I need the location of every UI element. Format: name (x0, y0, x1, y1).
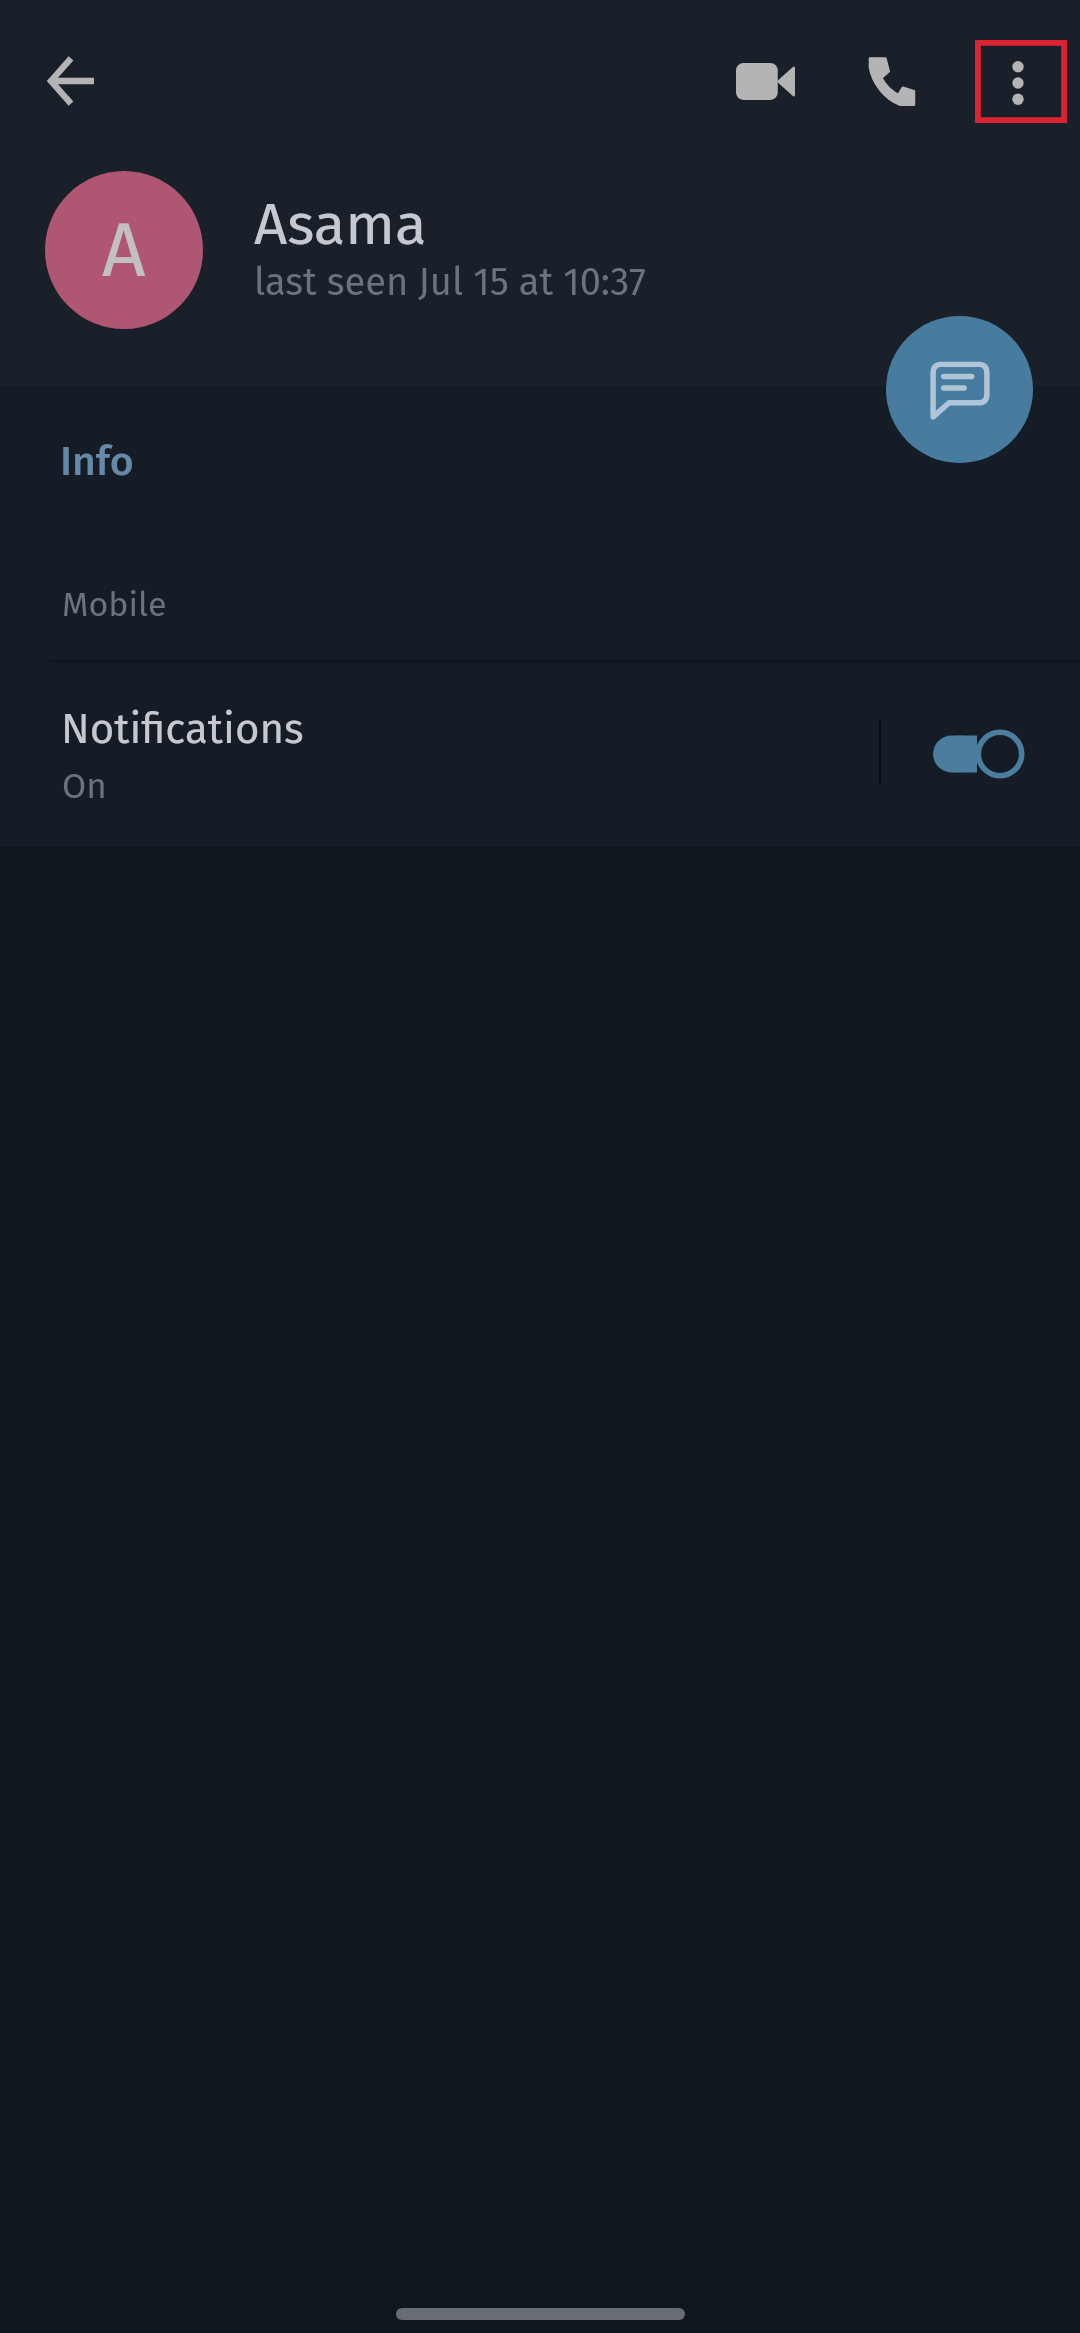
button[interactable]: Notifications toggle (920, 712, 1040, 796)
button[interactable]: Back (15, 25, 127, 137)
button[interactable]: More options (962, 27, 1074, 139)
button[interactable]: Notifications (0, 658, 1080, 836)
button[interactable]: Send message (886, 316, 1033, 463)
staticText: last seen Jul 15 at 10:37 (254, 259, 646, 305)
staticText: Info (60, 437, 134, 486)
button[interactable]: Call (835, 25, 947, 137)
button[interactable]: Mobile (0, 537, 1080, 657)
staticText: Asama (254, 190, 427, 260)
staticText: A (102, 205, 146, 296)
staticText: On (62, 765, 107, 807)
button[interactable]: Profile photo (45, 171, 203, 329)
staticText: Notifications (61, 704, 304, 754)
button[interactable]: Video call (709, 25, 821, 137)
staticText: Mobile (62, 584, 167, 625)
